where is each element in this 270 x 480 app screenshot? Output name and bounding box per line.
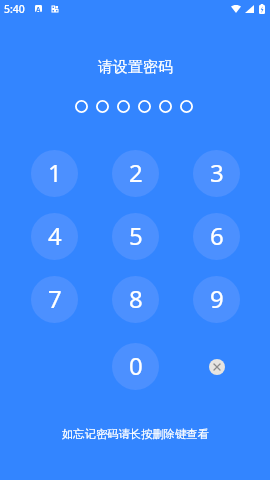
staticText: A — [36, 5, 41, 12]
button[interactable]: 2 — [112, 150, 159, 197]
staticText: 0 — [129, 349, 143, 382]
button[interactable]: 8 — [112, 276, 159, 323]
button[interactable]: 4 — [31, 213, 78, 260]
other: App notification — [35, 5, 42, 12]
button[interactable]: 6 — [193, 213, 240, 260]
staticText: 5:40 — [4, 2, 25, 16]
staticText: 4 — [48, 219, 62, 252]
staticText: 6 — [210, 219, 224, 252]
staticText: 9 — [210, 282, 224, 315]
button[interactable]: 3 — [193, 150, 240, 197]
staticText: 3 — [210, 156, 224, 189]
staticText: 7 — [48, 282, 62, 315]
button[interactable]: 1 — [31, 150, 78, 197]
staticText: 请设置密码 — [98, 58, 173, 77]
button[interactable]: 9 — [193, 276, 240, 323]
staticText: 如忘记密码请长按删除键查看 — [62, 427, 209, 441]
button[interactable]: 5 — [112, 213, 159, 260]
button[interactable]: 0 — [112, 343, 159, 390]
button[interactable]: Delete — [209, 359, 225, 375]
staticText: 2 — [129, 156, 143, 189]
other: Mobile signal — [245, 5, 254, 13]
other: Wi-Fi — [231, 5, 241, 13]
staticText: 1 — [48, 156, 62, 189]
staticText: 8 — [129, 282, 143, 315]
button[interactable]: 7 — [31, 276, 78, 323]
staticText: 5 — [129, 219, 143, 252]
other: Notification — [52, 6, 58, 12]
other: Battery charging — [259, 4, 265, 14]
